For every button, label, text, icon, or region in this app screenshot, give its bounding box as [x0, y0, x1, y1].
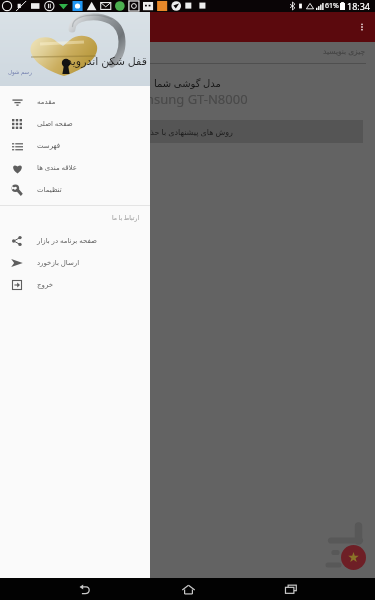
staticText: 18:34: [347, 0, 371, 12]
staticText: چیزی بنویسید: [323, 46, 366, 56]
button[interactable]: صفحه اصلی: [0, 113, 150, 135]
button[interactable]: Bazaar: [323, 522, 375, 572]
staticText: مدل گوشی شما: [0, 76, 375, 90]
button[interactable]: Recent apps: [271, 578, 311, 600]
button[interactable]: علاقه مندی ها: [0, 157, 150, 179]
button[interactable]: Home: [168, 578, 208, 600]
button[interactable]: صفحه برنامه در بازار: [0, 230, 150, 252]
staticText: Samsung GT-N8000: [0, 90, 375, 108]
staticText: فهرست: [37, 142, 61, 150]
staticText: قفل شکن اندروید: [67, 53, 147, 68]
staticText: روش های پیشنهادی با حذف: [142, 126, 233, 137]
button[interactable]: تنظیمات: [0, 179, 150, 201]
button[interactable]: چیزی بنویسید: [9, 42, 366, 64]
button[interactable]: ارسال بازخورد: [0, 252, 150, 274]
staticText: ارتباط با ما: [112, 214, 140, 222]
button[interactable]: فهرست: [0, 135, 150, 157]
staticText: صفحه اصلی: [37, 119, 73, 129]
button[interactable]: More options: [349, 12, 375, 42]
button[interactable]: قفل شکن اندروید: [0, 12, 150, 86]
button[interactable]: خروج: [0, 274, 150, 296]
staticText: مقدمه: [37, 98, 56, 106]
staticText: ارسال بازخورد: [37, 258, 80, 268]
staticText: رسم شول: [8, 68, 32, 75]
button[interactable]: روش های پیشنهادی با حذف: [12, 120, 363, 143]
staticText: 61%: [325, 1, 339, 11]
staticText: صفحه برنامه در بازار: [37, 236, 97, 246]
button[interactable]: مقدمه: [0, 91, 150, 113]
staticText: خروج: [37, 281, 54, 289]
staticText: علاقه مندی ها: [37, 163, 77, 173]
button[interactable]: Back: [64, 578, 104, 600]
staticText: تنظیمات: [37, 186, 62, 194]
